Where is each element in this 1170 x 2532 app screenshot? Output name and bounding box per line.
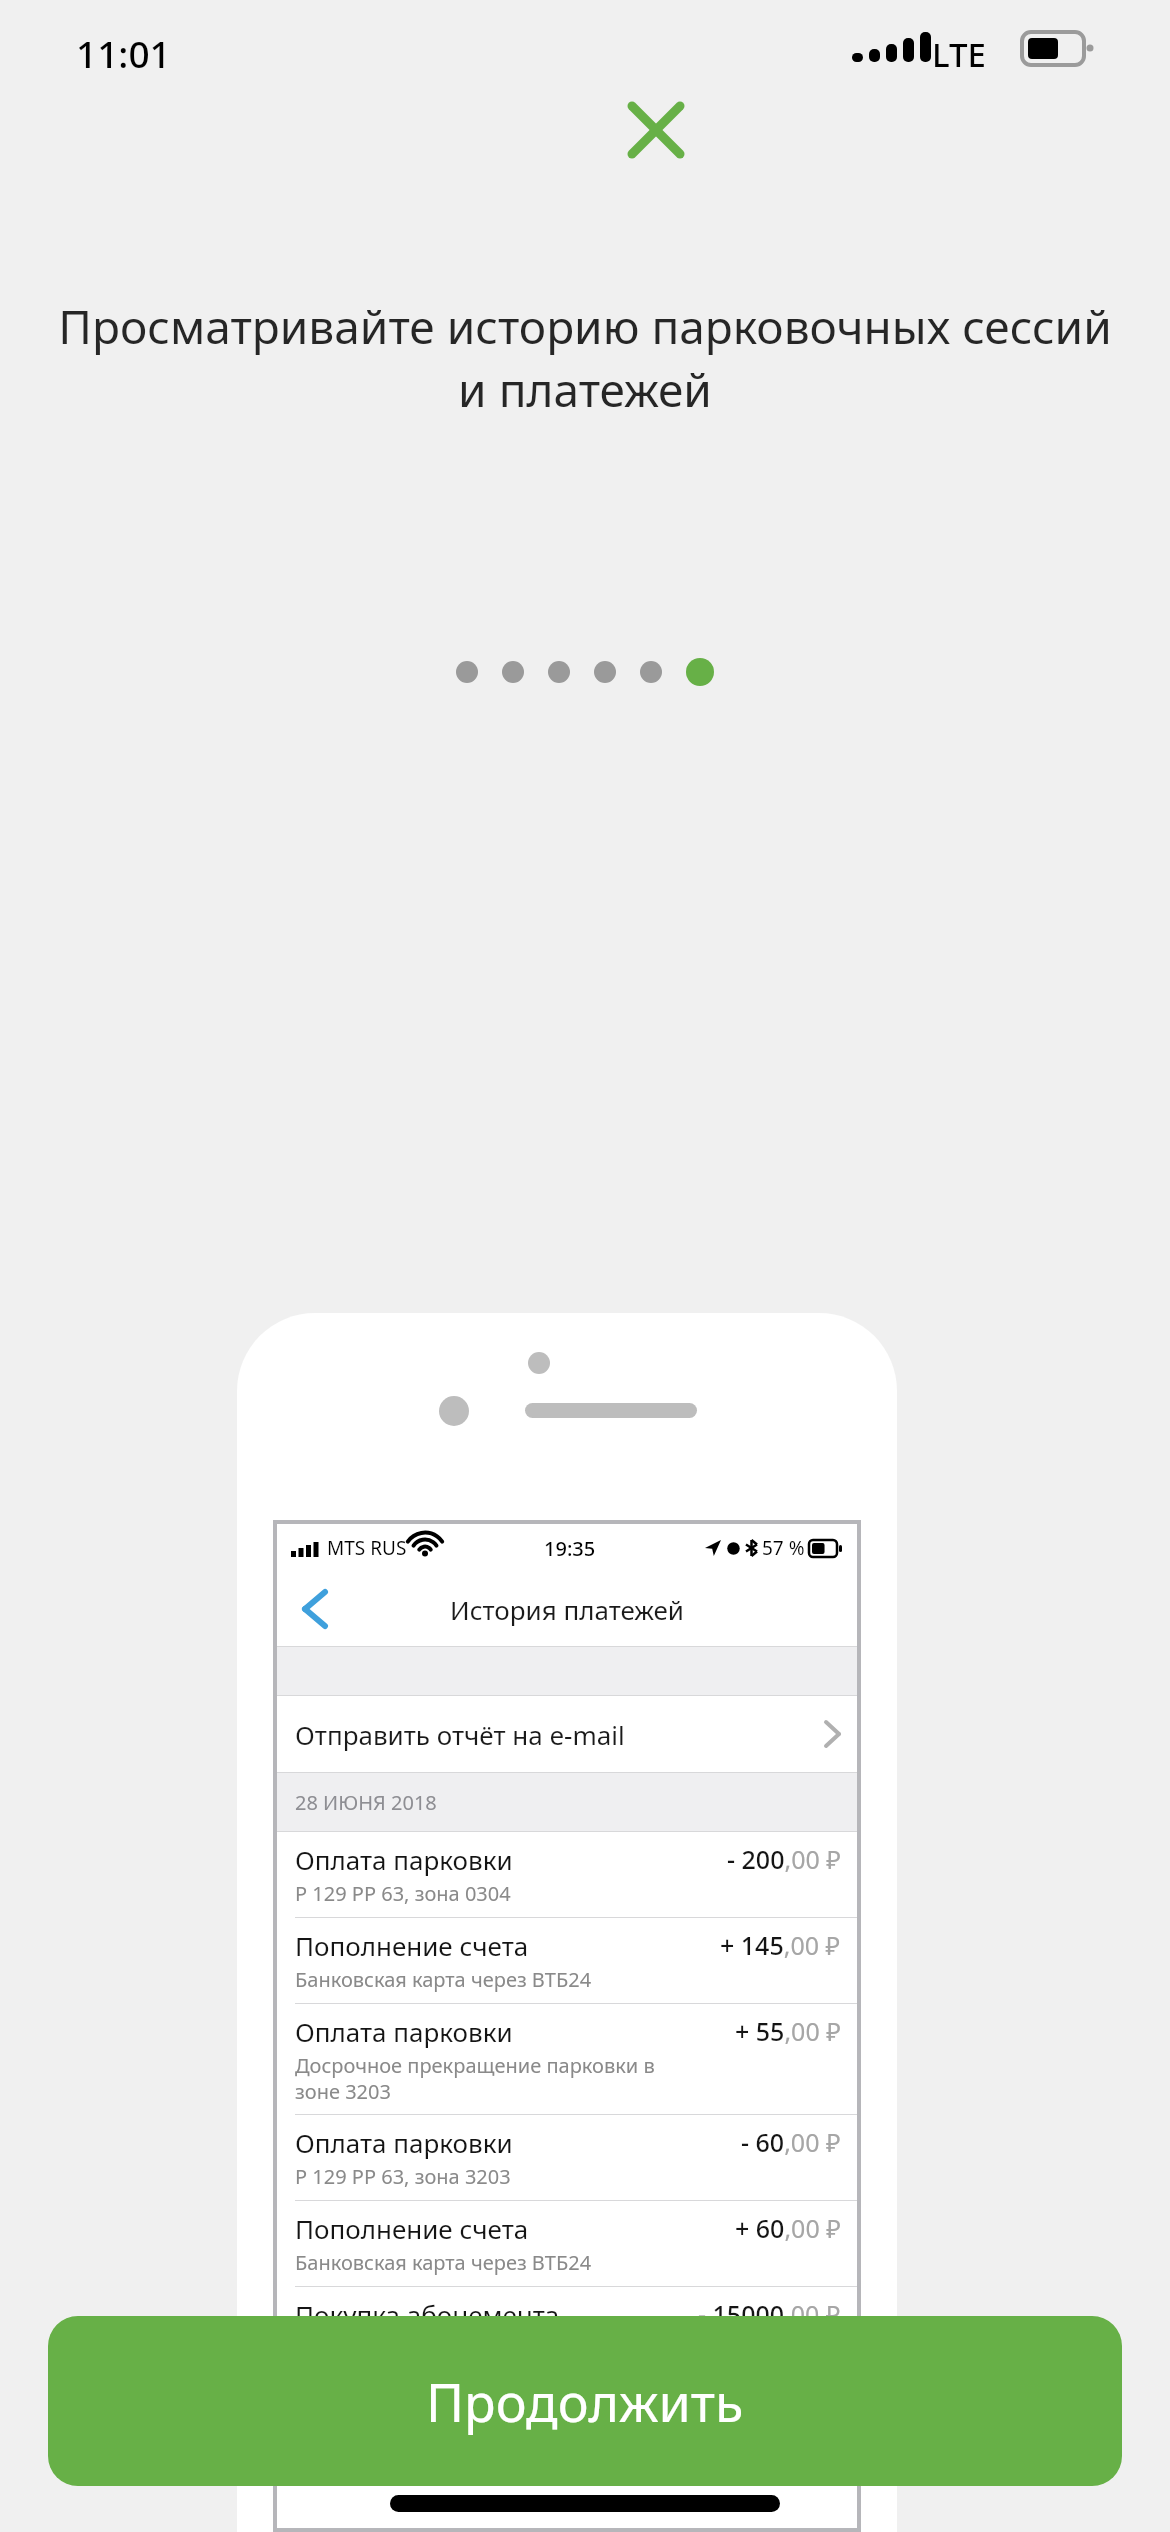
staticText: Пополнение счета [295,1928,529,1963]
button[interactable]: Закрыть [612,86,700,174]
staticText: Продолжить [426,2366,744,2437]
button[interactable]: Продолжить [48,2316,1122,2486]
staticText: 28 ИЮНЯ 2018 [295,1789,437,1816]
button[interactable]: Оплата парковки [277,2004,857,2115]
staticText: + 60,00 ₽ [735,2211,841,2245]
staticText: - 200,00 ₽ [727,1842,841,1876]
button[interactable] [502,661,524,683]
staticText: 19:35 [544,1535,596,1562]
staticText: 57 % [762,1535,805,1561]
staticText: Банковская карта через ВТБ24 [295,2249,592,2276]
staticText: Пополнение счета [295,2383,529,2418]
staticText: Банковская карта через ВТБ24 [295,2421,592,2448]
staticText: Оплата парковки [295,1842,513,1877]
staticText: Р 129 РР 63, зона 3203 [295,2163,511,2190]
staticText: MTS RUS [327,1535,407,1561]
button[interactable]: Отправить отчёт на e-mail [277,1696,857,1772]
button[interactable]: Назад [291,1585,339,1633]
staticText: Отправить отчёт на e-mail [295,1717,625,1752]
button[interactable] [640,661,662,683]
staticText: Просматривайте историю парковочных сесси… [48,295,1122,420]
button[interactable]: Оплата парковки [277,2115,857,2201]
button[interactable]: Оплата парковки [277,1832,857,1918]
staticText: Пополнение счета [295,2211,529,2246]
button[interactable] [594,661,616,683]
staticText: Р 129 РР 63, зона 0304 [295,1880,511,1907]
staticText: + 13000,67 ₽ [692,2383,841,2417]
button[interactable] [686,658,714,686]
staticText: История платежей [450,1592,685,1627]
button[interactable]: Покупка абонемента [277,2287,857,2373]
staticText: - 60,00 ₽ [741,2125,841,2159]
staticText: Досрочное прекращение парковки в зоне 32… [295,2052,655,2104]
staticText: Оплата парковки [295,2125,513,2160]
staticText: - 15000,00 ₽ [698,2297,841,2331]
staticText: + 55,00 ₽ [735,2014,841,2048]
button[interactable] [456,661,478,683]
staticText: Банковская карта через ВТБ24 [295,1966,592,1993]
staticText: + 145,00 ₽ [720,1928,841,1962]
button[interactable] [548,661,570,683]
button[interactable]: Пополнение счета [277,2201,857,2287]
staticText: LTE [932,32,986,77]
staticText: Покупка абонемента [295,2297,560,2332]
staticText: 11:01 [76,28,171,78]
button[interactable]: Пополнение счета [277,1918,857,2004]
button[interactable]: Пополнение счета [277,2373,857,2459]
staticText: Оплата парковки [295,2014,513,2049]
